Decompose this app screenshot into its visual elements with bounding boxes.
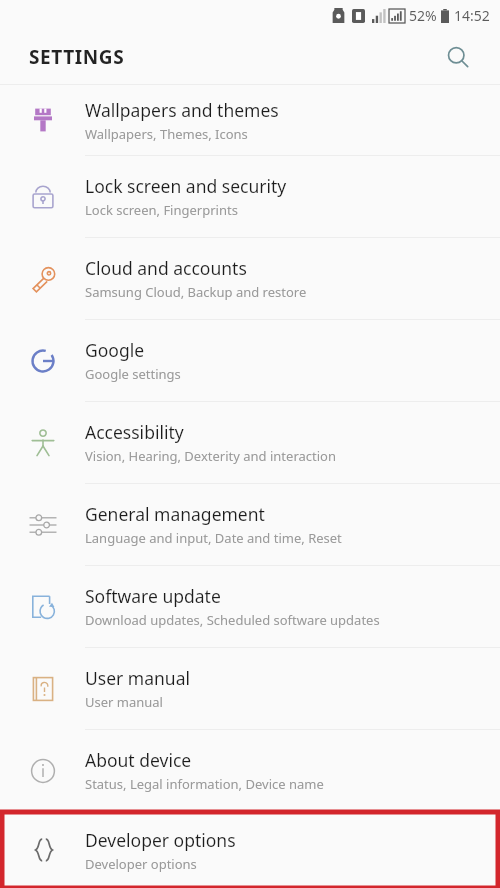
staticText: Software update <box>85 584 221 608</box>
button[interactable]: Search <box>436 35 480 79</box>
staticText: Language and input, Date and time, Reset <box>85 529 342 547</box>
staticText: About device <box>85 748 192 772</box>
staticText: Samsung Cloud, Backup and restore <box>85 283 307 301</box>
staticText: Developer options <box>85 828 236 852</box>
staticText: Google <box>85 338 145 362</box>
staticText: Download updates, Scheduled software upd… <box>85 611 380 629</box>
staticText: SETTINGS <box>29 44 125 70</box>
staticText: User manual <box>85 666 190 690</box>
button[interactable]: General management <box>0 484 500 565</box>
staticText: 14:52 <box>454 6 490 25</box>
button[interactable]: User manual <box>0 648 500 729</box>
button[interactable]: Wallpapers and themes <box>0 85 500 155</box>
staticText: Lock screen, Fingerprints <box>85 201 238 219</box>
staticText: Developer options <box>85 855 197 873</box>
staticText: Wallpapers, Themes, Icons <box>85 125 248 143</box>
button[interactable]: Accessibility <box>0 402 500 483</box>
button[interactable]: Lock screen and security <box>0 156 500 237</box>
staticText: User manual <box>85 693 163 711</box>
staticText: 52% <box>409 6 437 25</box>
button[interactable]: Software update <box>0 566 500 647</box>
staticText: Accessibility <box>85 420 184 444</box>
staticText: Status, Legal information, Device name <box>85 775 324 793</box>
staticText: Wallpapers and themes <box>85 98 279 122</box>
staticText: General management <box>85 502 265 526</box>
button[interactable]: Developer options <box>2 812 498 888</box>
button[interactable]: About device <box>0 730 500 811</box>
staticText: Lock screen and security <box>85 174 287 198</box>
button[interactable]: Google <box>0 320 500 401</box>
button[interactable]: Cloud and accounts <box>0 238 500 319</box>
staticText: Vision, Hearing, Dexterity and interacti… <box>85 447 336 465</box>
staticText: Cloud and accounts <box>85 256 247 280</box>
staticText: Google settings <box>85 365 181 383</box>
